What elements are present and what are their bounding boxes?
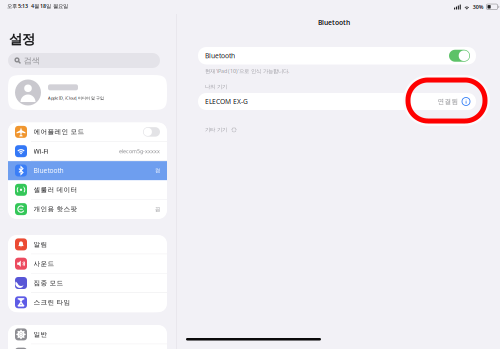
staticText: 나의 기기 bbox=[205, 83, 227, 90]
staticText: ELECOM EX-G bbox=[205, 97, 248, 106]
button[interactable]: Apple ID, iCloud, 미디어 및 구입 bbox=[8, 75, 167, 110]
button[interactable]: 셀룰러 데이터 bbox=[8, 180, 167, 200]
staticText: 일반 bbox=[33, 330, 47, 338]
staticText: 스크린 타임 bbox=[33, 298, 70, 306]
button[interactable]: ELECOM EX-G bbox=[198, 93, 476, 110]
staticText: 연결됨 bbox=[437, 97, 458, 106]
staticText: Apple ID, iCloud, 미디어 및 구입 bbox=[48, 95, 104, 101]
staticText: elecom5g-xxxxx bbox=[119, 148, 160, 155]
button[interactable]: Wi-Fi bbox=[8, 142, 167, 161]
staticText: 셀룰러 데이터 bbox=[33, 186, 77, 194]
staticText: 오후 5:13 4월 18일 월요일 bbox=[7, 2, 68, 10]
staticText: 기타 기기 bbox=[205, 126, 227, 133]
button[interactable]: 에어플레인 모드 bbox=[8, 122, 167, 142]
button[interactable]: Bluetooth bbox=[198, 47, 476, 64]
staticText: Bluetooth bbox=[205, 51, 235, 60]
button[interactable]: 일반 bbox=[8, 325, 167, 344]
staticText: 에어플레인 모드 bbox=[33, 128, 84, 136]
staticText: 설정 bbox=[9, 31, 35, 47]
staticText: Bluetooth bbox=[318, 18, 350, 27]
button[interactable]: 알림 bbox=[8, 235, 167, 254]
staticText: 집중 모드 bbox=[33, 279, 63, 287]
staticText: Wi-Fi bbox=[33, 147, 48, 156]
staticText: 30% bbox=[473, 3, 484, 11]
staticText: 검색 bbox=[24, 56, 40, 65]
staticText: 켬 bbox=[155, 167, 160, 174]
button[interactable]: Bluetooth bbox=[8, 161, 167, 180]
staticText: 알림 bbox=[33, 240, 47, 248]
staticText: 사운드 bbox=[33, 260, 54, 268]
staticText: 끔 bbox=[155, 206, 160, 212]
button[interactable]: 사운드 bbox=[8, 254, 167, 274]
staticText: Bluetooth bbox=[33, 166, 63, 175]
button[interactable]: 개인용 핫스팟 bbox=[8, 200, 167, 219]
staticText: 현재 'iPad (10)'으로 인식 가능합니다. bbox=[205, 67, 289, 75]
button[interactable]: 집중 모드 bbox=[8, 274, 167, 293]
button[interactable]: 제어 센터 bbox=[8, 344, 167, 349]
button[interactable]: 스크린 타임 bbox=[8, 293, 167, 312]
staticText: 개인용 핫스팟 bbox=[33, 205, 77, 213]
